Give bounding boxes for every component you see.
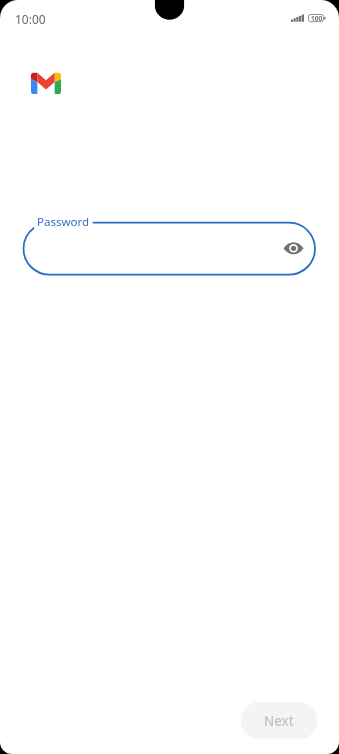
staticText: 10:00 xyxy=(15,11,46,27)
staticText: Password xyxy=(37,214,90,230)
staticText: Next xyxy=(264,712,294,730)
staticText: 100 xyxy=(311,14,323,22)
button[interactable]: Password text field xyxy=(22,221,316,276)
button[interactable]: Show password xyxy=(281,236,306,260)
button[interactable]: Next xyxy=(241,702,317,739)
